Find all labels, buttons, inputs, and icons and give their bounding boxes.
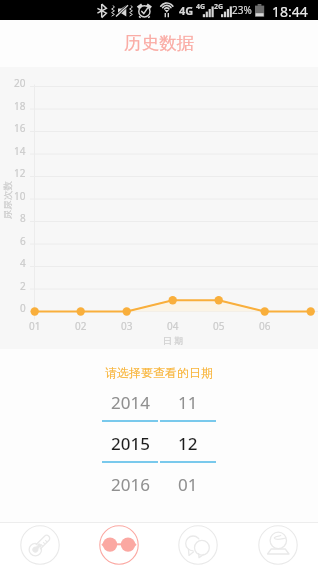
button[interactable]: 2016	[102, 468, 158, 500]
staticText: 18	[14, 99, 26, 113]
staticText: 2G	[214, 2, 224, 12]
staticText: 14	[14, 144, 26, 158]
staticText: 2014	[111, 391, 150, 414]
staticText: 4G	[179, 3, 194, 18]
staticText: 23%	[232, 3, 252, 17]
staticText: 10	[14, 189, 26, 203]
staticText: 06	[259, 319, 271, 333]
staticText: 04	[167, 319, 179, 333]
staticText: 2016	[111, 473, 150, 496]
staticText: 尿尿次数	[2, 181, 14, 219]
staticText: 20	[14, 76, 26, 90]
staticText: 05	[213, 319, 225, 333]
staticText: 02	[75, 319, 87, 333]
staticText: 4	[20, 256, 26, 270]
staticText: 日 期	[163, 334, 184, 346]
button[interactable]: Glasses	[79, 522, 158, 566]
staticText: 0	[20, 301, 26, 315]
staticText: 6	[20, 234, 26, 248]
staticText: 历史数据	[124, 32, 194, 54]
button[interactable]: 01	[160, 468, 216, 500]
button[interactable]: 2015	[102, 427, 158, 459]
staticText: 18:44	[272, 2, 308, 21]
staticText: 8	[20, 211, 26, 225]
staticText: 请选择要查看的日期	[105, 365, 213, 380]
button[interactable]: Messages	[158, 522, 238, 566]
staticText: 12	[178, 432, 198, 455]
staticText: 03	[121, 319, 133, 333]
staticText: 01	[178, 473, 198, 496]
button[interactable]: 11	[160, 386, 216, 418]
staticText: 2015	[111, 432, 150, 455]
staticText: 16	[14, 121, 26, 135]
button[interactable]: Profile	[238, 522, 318, 566]
staticText: 01	[29, 319, 41, 333]
button[interactable]: Temperature	[0, 522, 79, 566]
button[interactable]: 12	[160, 427, 216, 459]
staticText: 12	[14, 166, 26, 180]
button[interactable]: 2014	[102, 386, 158, 418]
staticText: 2	[20, 279, 26, 293]
staticText: 11	[178, 391, 198, 414]
staticText: 4G	[196, 2, 206, 12]
